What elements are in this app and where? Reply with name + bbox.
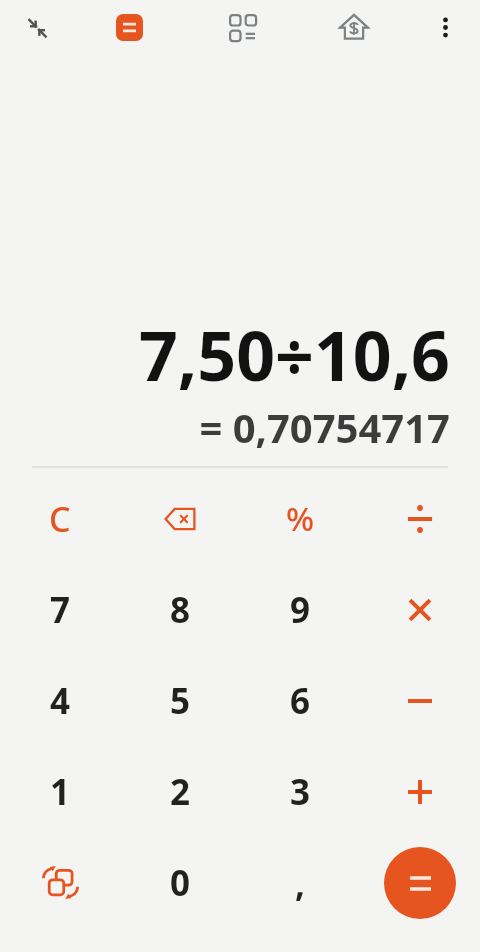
button[interactable]: Equals [384,847,456,919]
button[interactable]: Unit converter [184,0,300,54]
staticText: 8 [170,586,191,634]
button[interactable]: Mortgage [300,0,408,54]
staticText: 0 [170,859,191,907]
staticText: 3 [290,768,311,816]
button[interactable]: Minus [360,655,480,746]
staticText: 5 [170,677,191,725]
button[interactable]: Plus [360,746,480,837]
button[interactable]: 3 [240,746,360,837]
staticText: 9 [290,586,311,634]
button[interactable]: C [0,473,120,564]
staticText: % [286,496,315,541]
staticText: 4 [50,677,71,725]
button[interactable]: 7 [0,564,120,655]
staticText: , [295,859,305,907]
staticText: = 0,70754717 [199,400,450,454]
button[interactable]: 4 [0,655,120,746]
button[interactable]: Calculator [75,0,184,54]
button[interactable]: % [240,473,360,564]
button[interactable]: 0 [120,837,240,928]
button[interactable]: 9 [240,564,360,655]
staticText: 6 [290,677,311,725]
button[interactable]: 2 [120,746,240,837]
staticText: 7 [50,586,71,634]
button[interactable]: 1 [0,746,120,837]
button[interactable]: Multiply [360,564,480,655]
button[interactable]: 5 [120,655,240,746]
button[interactable]: 8 [120,564,240,655]
button[interactable]: Collapse [0,0,75,54]
staticText: C [49,496,71,542]
staticText: 1 [50,768,71,816]
staticText: 2 [170,768,191,816]
button[interactable]: More options [408,0,480,54]
button[interactable]: Divide [360,473,480,564]
button[interactable]: Backspace [120,473,240,564]
button[interactable]: Convert units [0,837,120,928]
staticText: 7,50÷10,6 [138,308,450,401]
button[interactable]: , [240,837,360,928]
button[interactable]: 6 [240,655,360,746]
